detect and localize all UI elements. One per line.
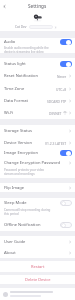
staticText: Time Zone <box>4 86 25 92</box>
button[interactable]: Reset Notification <box>0 69 75 82</box>
staticText: Camera will stop recording during this p… <box>4 208 51 216</box>
staticText: Audio <box>4 39 16 45</box>
staticText: Cat Dev <box>15 25 27 29</box>
staticText: V1.2.3 LATEST <box>45 141 67 145</box>
staticText: Status light <box>4 61 26 67</box>
button[interactable]: Time Zone <box>0 82 75 95</box>
staticText: About <box>4 250 16 256</box>
button[interactable]: Switch on <box>60 39 72 45</box>
button[interactable]: Switch off <box>60 222 72 228</box>
button[interactable]: Status light <box>0 58 75 69</box>
staticText: Delete Device <box>25 277 51 282</box>
button[interactable]: Flip Image <box>0 183 75 192</box>
button[interactable]: Switch on <box>60 61 72 67</box>
staticText: Offline Notification <box>4 222 41 228</box>
staticText: SDCARD FTP <box>47 99 67 103</box>
button[interactable]: Restart <box>0 261 75 272</box>
staticText: Settings <box>28 3 47 9</box>
button[interactable]: Cat Dev <box>0 23 75 31</box>
staticText: Flip Image <box>4 185 25 191</box>
staticText: Storage Status <box>4 128 32 134</box>
button[interactable]: Audio <box>0 38 75 46</box>
button[interactable]: Switch off <box>60 200 72 206</box>
button[interactable]: Delete Device <box>0 275 75 284</box>
staticText: Wi-Fi <box>4 110 14 116</box>
button[interactable]: Data Format <box>0 95 75 107</box>
button[interactable] <box>0 288 75 300</box>
staticText: Password protects your video stream and … <box>4 168 45 176</box>
button[interactable]: Storage Status <box>0 125 75 137</box>
button[interactable]: Back <box>0 2 9 11</box>
staticText: Sleep Mode <box>4 200 27 206</box>
staticText: DEVNET <box>49 111 62 115</box>
staticText: Reset Notification <box>4 73 39 79</box>
button[interactable]: About <box>0 247 75 258</box>
staticText: Change Encryption Password <box>4 160 61 166</box>
button[interactable]: Image Encryption <box>0 148 75 158</box>
button[interactable]: Device Version <box>0 137 75 148</box>
button[interactable]: Offline Notification <box>0 218 75 231</box>
staticText: Restart <box>31 264 45 269</box>
staticText: User Guide <box>4 239 26 245</box>
staticText: UTC+8 <box>56 87 67 91</box>
staticText: Enable audio recording while the device … <box>4 46 49 53</box>
staticText: Image Encryption <box>4 150 39 156</box>
button[interactable]: Wi-Fi <box>0 107 75 119</box>
staticText: Device Version <box>4 140 33 146</box>
staticText: Never <box>57 74 67 78</box>
staticText: Data Format <box>4 98 29 104</box>
button[interactable]: Change Encryption Password <box>0 158 75 168</box>
button[interactable]: User Guide <box>0 236 75 247</box>
button[interactable]: Sleep Mode <box>0 198 75 208</box>
button[interactable]: Switch on <box>60 150 72 156</box>
